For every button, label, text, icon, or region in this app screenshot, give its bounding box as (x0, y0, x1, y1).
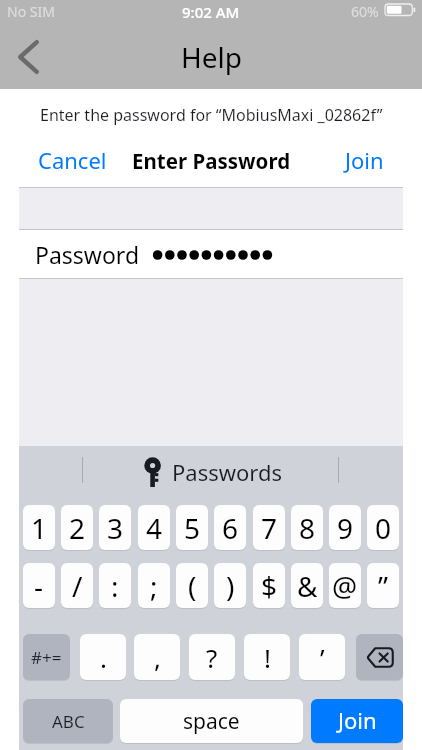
staticText: Help (181, 38, 242, 76)
staticText: ” (378, 567, 389, 605)
button[interactable]: 0 (367, 505, 399, 550)
staticText: Passwords (172, 457, 283, 487)
button[interactable]: Back (3, 35, 53, 79)
staticText: Join (338, 705, 377, 735)
staticText: 0 (375, 509, 392, 547)
staticText: 60% (351, 2, 379, 21)
staticText: Enter Password (132, 147, 291, 175)
button[interactable]: ; (138, 563, 170, 608)
staticText: ? (206, 640, 218, 675)
staticText: 1 (31, 509, 48, 547)
button[interactable]: $ (253, 563, 285, 608)
staticText: ABC (52, 710, 85, 733)
button[interactable]: / (61, 563, 93, 608)
staticText: ) (226, 567, 235, 605)
button[interactable]: 8 (291, 505, 323, 550)
staticText: : (111, 567, 119, 605)
staticText: 4 (146, 509, 163, 547)
staticText: Join (345, 145, 384, 175)
staticText: Cancel (38, 145, 107, 175)
button[interactable]: space (120, 699, 303, 743)
button[interactable]: 4 (138, 505, 170, 550)
button[interactable]: ABC (23, 699, 113, 743)
staticText: Password (35, 239, 140, 270)
button[interactable]: ) (214, 563, 246, 608)
button[interactable]: Cancel (38, 145, 107, 175)
staticText: / (72, 567, 83, 605)
button[interactable]: ( (176, 563, 208, 608)
staticText: ( (188, 567, 197, 605)
staticText: 7 (261, 509, 278, 547)
button[interactable]: 3 (99, 505, 131, 550)
staticText: 8 (299, 509, 316, 547)
staticText: #+= (31, 646, 62, 669)
staticText: 9:02 AM (182, 2, 240, 22)
staticText: & (297, 567, 318, 605)
staticText: 9 (337, 509, 354, 547)
button[interactable]: 2 (61, 505, 93, 550)
staticText: , (154, 640, 161, 675)
button[interactable]: @ (329, 563, 361, 608)
button[interactable]: ! (244, 634, 290, 680)
button[interactable]: Passwords (19, 448, 403, 492)
button[interactable]: Join (345, 145, 384, 175)
staticText: . (100, 640, 107, 675)
button[interactable]: #+= (23, 634, 70, 680)
staticText: ’ (320, 640, 325, 675)
button[interactable]: & (291, 563, 323, 608)
button[interactable]: ” (367, 563, 399, 608)
button[interactable]: : (99, 563, 131, 608)
button[interactable]: Join (311, 699, 403, 743)
button[interactable]: 1 (23, 505, 55, 550)
staticText: @ (332, 567, 358, 605)
staticText: ; (150, 567, 158, 605)
button[interactable]: Delete (356, 634, 403, 680)
button[interactable]: . (80, 634, 126, 680)
staticText: 3 (107, 509, 124, 547)
staticText: Enter the password for “MobiusMaxi _0286… (40, 104, 383, 126)
button[interactable]: ? (189, 634, 235, 680)
staticText: ! (264, 640, 271, 675)
button[interactable]: - (23, 563, 55, 608)
staticText: 2 (69, 509, 86, 547)
button[interactable]: , (134, 634, 180, 680)
staticText: space (183, 707, 240, 736)
staticText: 5 (184, 509, 201, 547)
button[interactable]: 6 (214, 505, 246, 550)
button[interactable]: ’ (299, 634, 345, 680)
button[interactable]: 7 (253, 505, 285, 550)
button[interactable]: 9 (329, 505, 361, 550)
button[interactable]: Password (19, 229, 403, 279)
staticText: 6 (222, 509, 239, 547)
staticText: $ (261, 567, 278, 605)
staticText: No SIM (7, 2, 55, 21)
button[interactable]: 5 (176, 505, 208, 550)
staticText: - (34, 567, 44, 605)
